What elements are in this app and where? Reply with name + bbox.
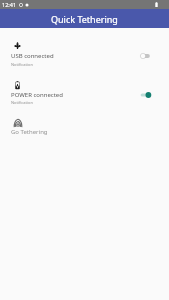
staticText: Quick Tethering xyxy=(51,13,118,25)
staticText: Notification xyxy=(11,62,33,67)
button[interactable] xyxy=(0,34,169,72)
button[interactable] xyxy=(0,114,169,142)
button[interactable] xyxy=(0,74,169,112)
staticText: Notification xyxy=(11,100,33,105)
staticText: Go Tethering xyxy=(11,128,48,136)
button[interactable]: Switch on xyxy=(139,90,157,100)
staticText: 12:41 xyxy=(2,1,17,8)
staticText: POWER connected xyxy=(11,91,63,99)
button[interactable]: Switch off xyxy=(139,51,157,61)
staticText: USB connected xyxy=(11,52,54,60)
